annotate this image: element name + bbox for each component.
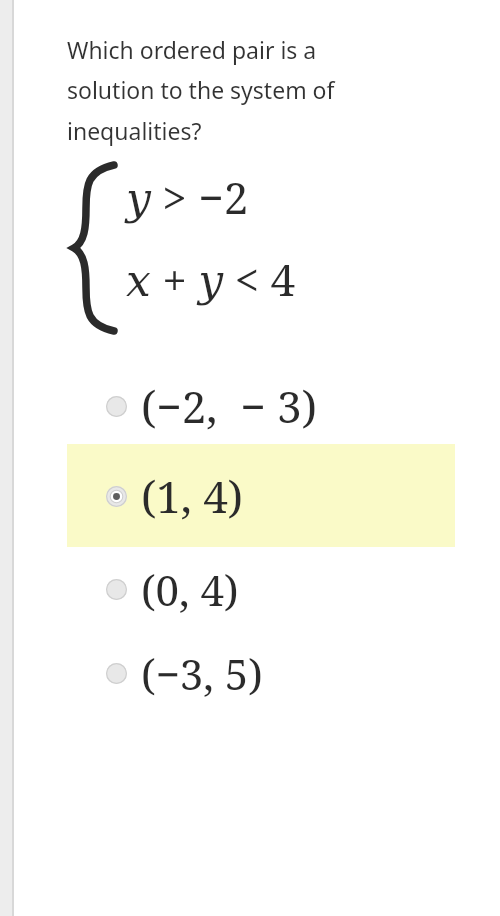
- staticText: 𝑥 + 𝑦 < 4: [126, 249, 296, 309]
- button[interactable]: (−2, − 3): [67, 368, 455, 444]
- button[interactable]: (0, 4): [67, 547, 455, 631]
- button[interactable]: (−3, 5): [67, 631, 455, 715]
- button[interactable]: (1, 4): [67, 444, 455, 547]
- staticText: (1, 4): [141, 466, 244, 526]
- staticText: (−2, − 3): [141, 376, 317, 436]
- staticText: 𝑦 > −2: [126, 167, 249, 227]
- staticText: (0, 4): [141, 561, 239, 618]
- staticText: Which ordered pair is a solution to the …: [67, 34, 335, 147]
- staticText: (−3, 5): [141, 645, 263, 702]
